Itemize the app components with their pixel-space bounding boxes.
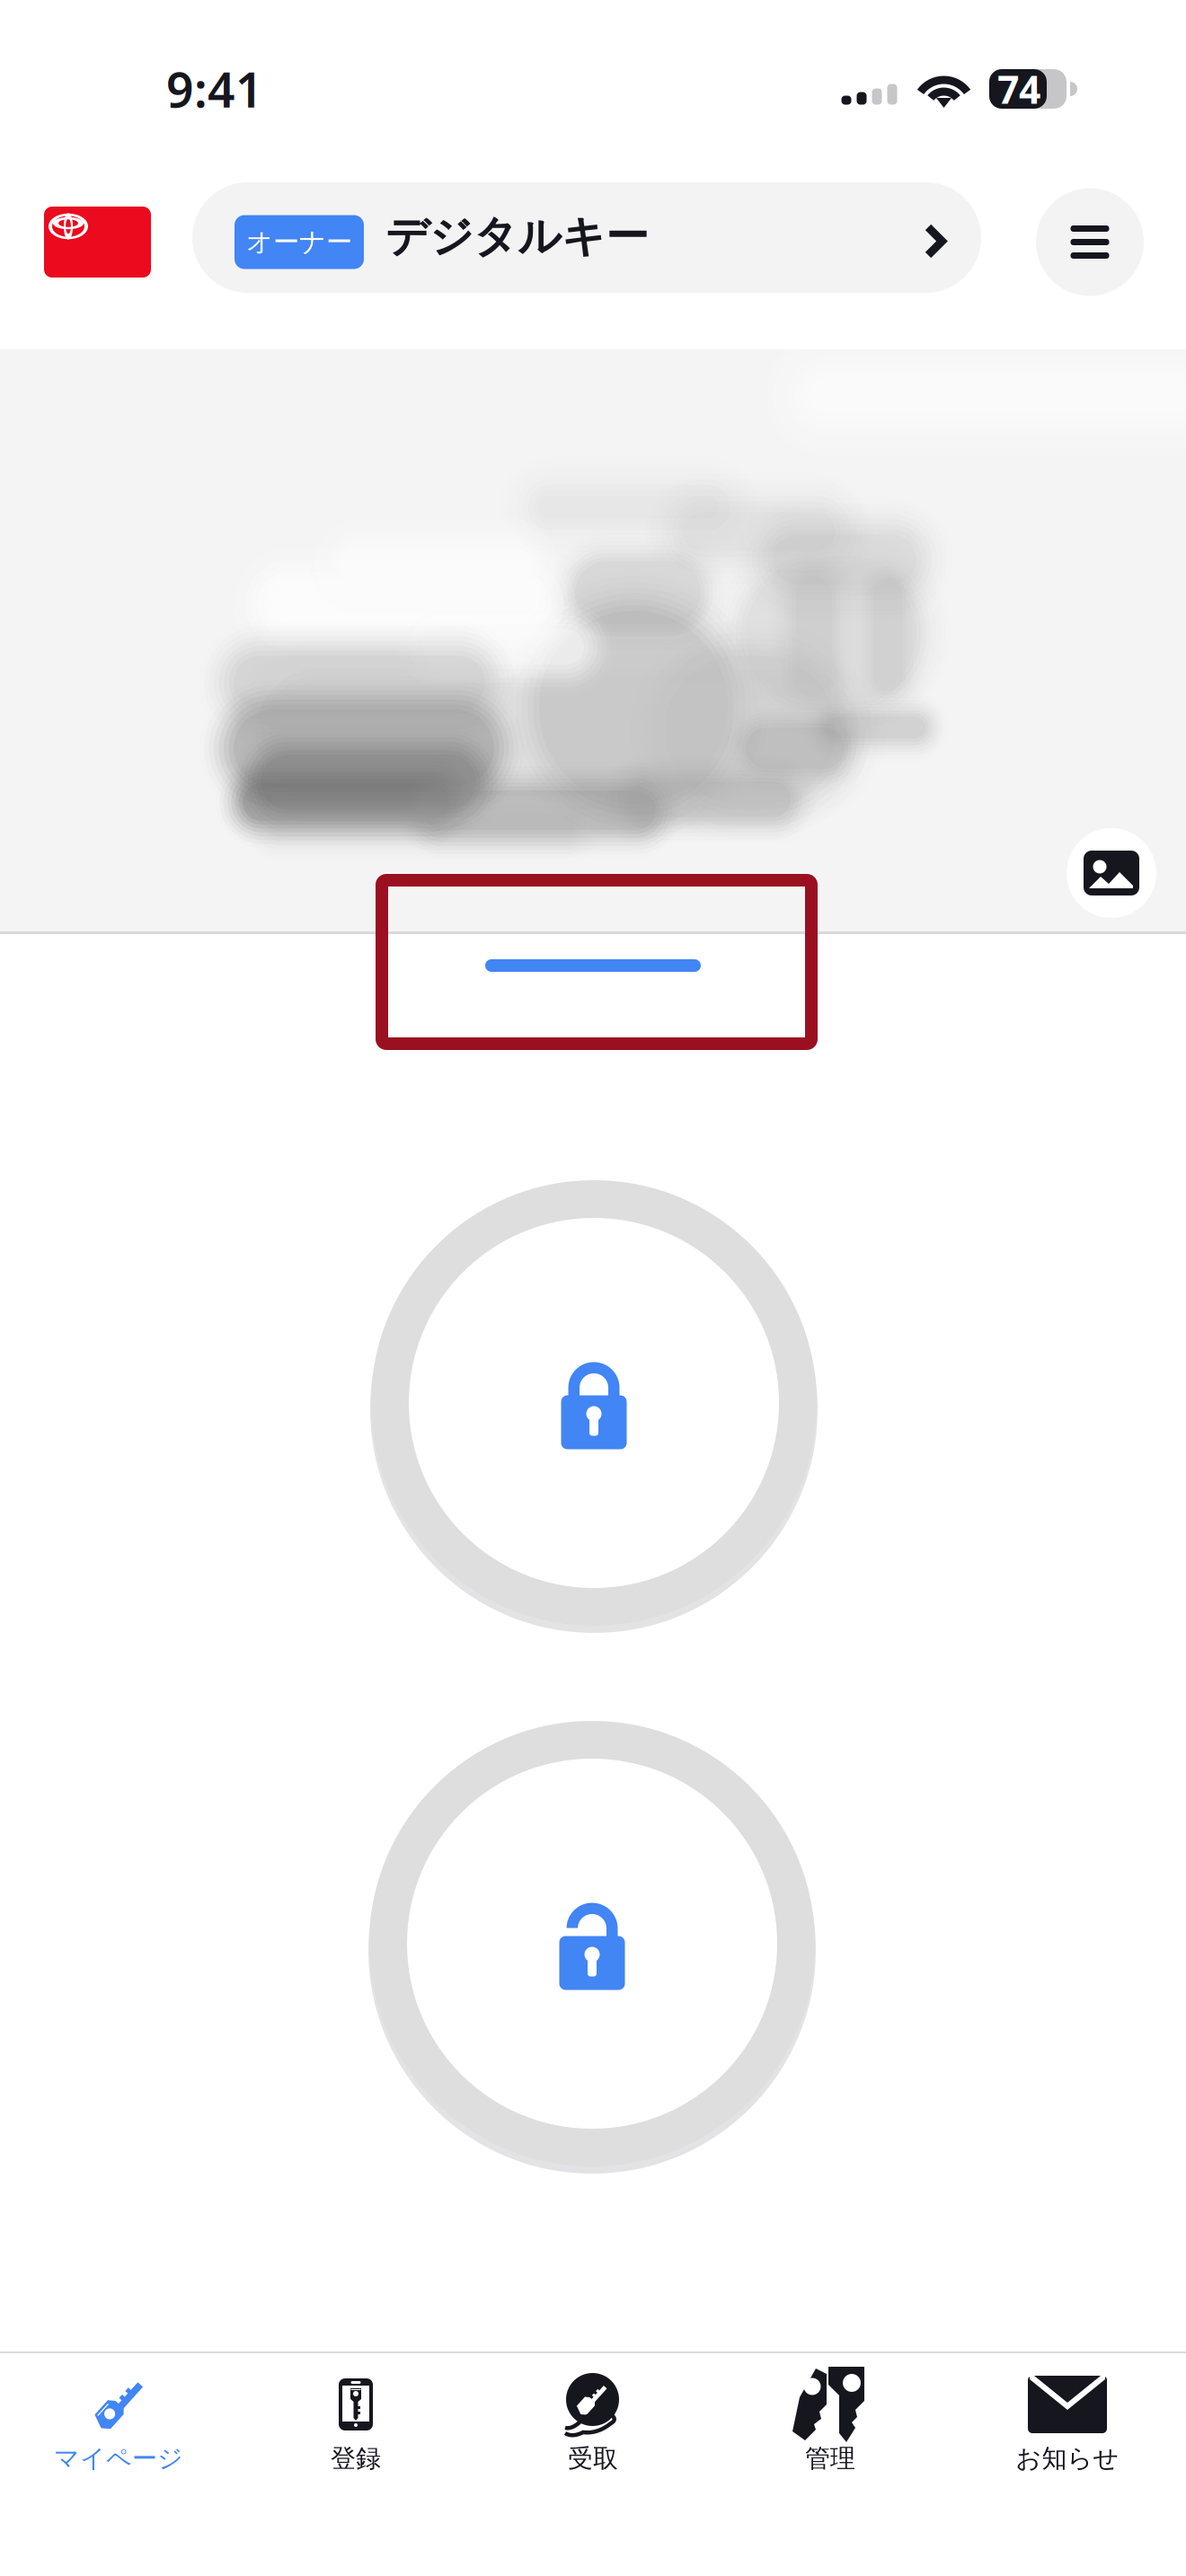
staticText: オーナー	[246, 226, 352, 258]
button[interactable]: 管理	[712, 2353, 949, 2574]
button[interactable]: Lock doors	[368, 1178, 819, 1628]
button[interactable]: Change vehicle photo	[1067, 828, 1156, 918]
staticText: デジタルキー	[385, 210, 649, 263]
button[interactable]: Menu	[1036, 188, 1144, 296]
staticText: 登録	[331, 2443, 381, 2474]
button[interactable]: お知らせ	[949, 2353, 1186, 2574]
staticText: 管理	[805, 2443, 855, 2474]
staticText: 74	[997, 64, 1040, 114]
staticText: 9:41	[166, 57, 263, 121]
button[interactable]: 登録	[237, 2353, 474, 2574]
button[interactable]: マイページ	[0, 2353, 237, 2574]
staticText: お知らせ	[1016, 2443, 1119, 2474]
button[interactable]: 受取	[474, 2353, 712, 2574]
button[interactable]: Unlock doors	[367, 1718, 818, 2169]
button[interactable]: オーナー	[192, 182, 981, 293]
button[interactable]: Toyota	[44, 207, 151, 278]
staticText: マイページ	[54, 2443, 183, 2474]
staticText: 受取	[568, 2443, 618, 2474]
